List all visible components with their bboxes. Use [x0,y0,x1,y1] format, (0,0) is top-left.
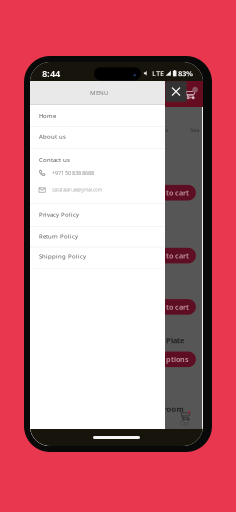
staticText: Privacy Policy [39,210,79,218]
staticText: Sea [190,125,199,134]
button[interactable]: Contact us [30,151,165,168]
staticText: Return Policy [39,232,78,240]
staticText: ts [164,125,169,134]
button[interactable]: to cart [156,248,196,263]
button[interactable]: About us [30,127,165,149]
staticText: Home [39,112,56,120]
staticText: 8:44 [42,67,60,80]
staticText: LTE [152,68,164,78]
button[interactable]: ptions [156,351,196,367]
button[interactable]: to cart [156,299,196,315]
button[interactable]: Privacy Policy [30,204,165,227]
button[interactable]: Cart [178,411,192,426]
button[interactable]: sadafalain.ae@gmail.com [30,183,165,196]
button[interactable]: Return Policy [30,227,165,247]
staticText: sadafalain.ae@gmail.com [52,187,102,193]
button[interactable]: Shipping Policy [30,247,165,269]
staticText: to cart [166,251,189,260]
staticText: Contact us [39,156,70,164]
button[interactable]: +971 50 838 8688 [30,166,165,179]
staticText: Cart [180,420,190,427]
staticText: to cart [166,302,189,312]
button[interactable]: Home [30,105,165,127]
button[interactable]: to cart [156,185,196,200]
staticText: Shipping Policy [39,252,86,260]
staticText: +971 50 838 8688 [52,169,94,177]
button[interactable]: Close menu [165,81,186,102]
staticText: 83% [178,68,193,78]
staticText: Plate [166,335,184,345]
staticText: ptions [166,354,189,364]
staticText: room [163,404,183,414]
button[interactable]: Cart [182,87,198,100]
staticText: About us [39,132,66,140]
staticText: to cart [166,188,189,198]
staticText: MENU [90,88,108,97]
